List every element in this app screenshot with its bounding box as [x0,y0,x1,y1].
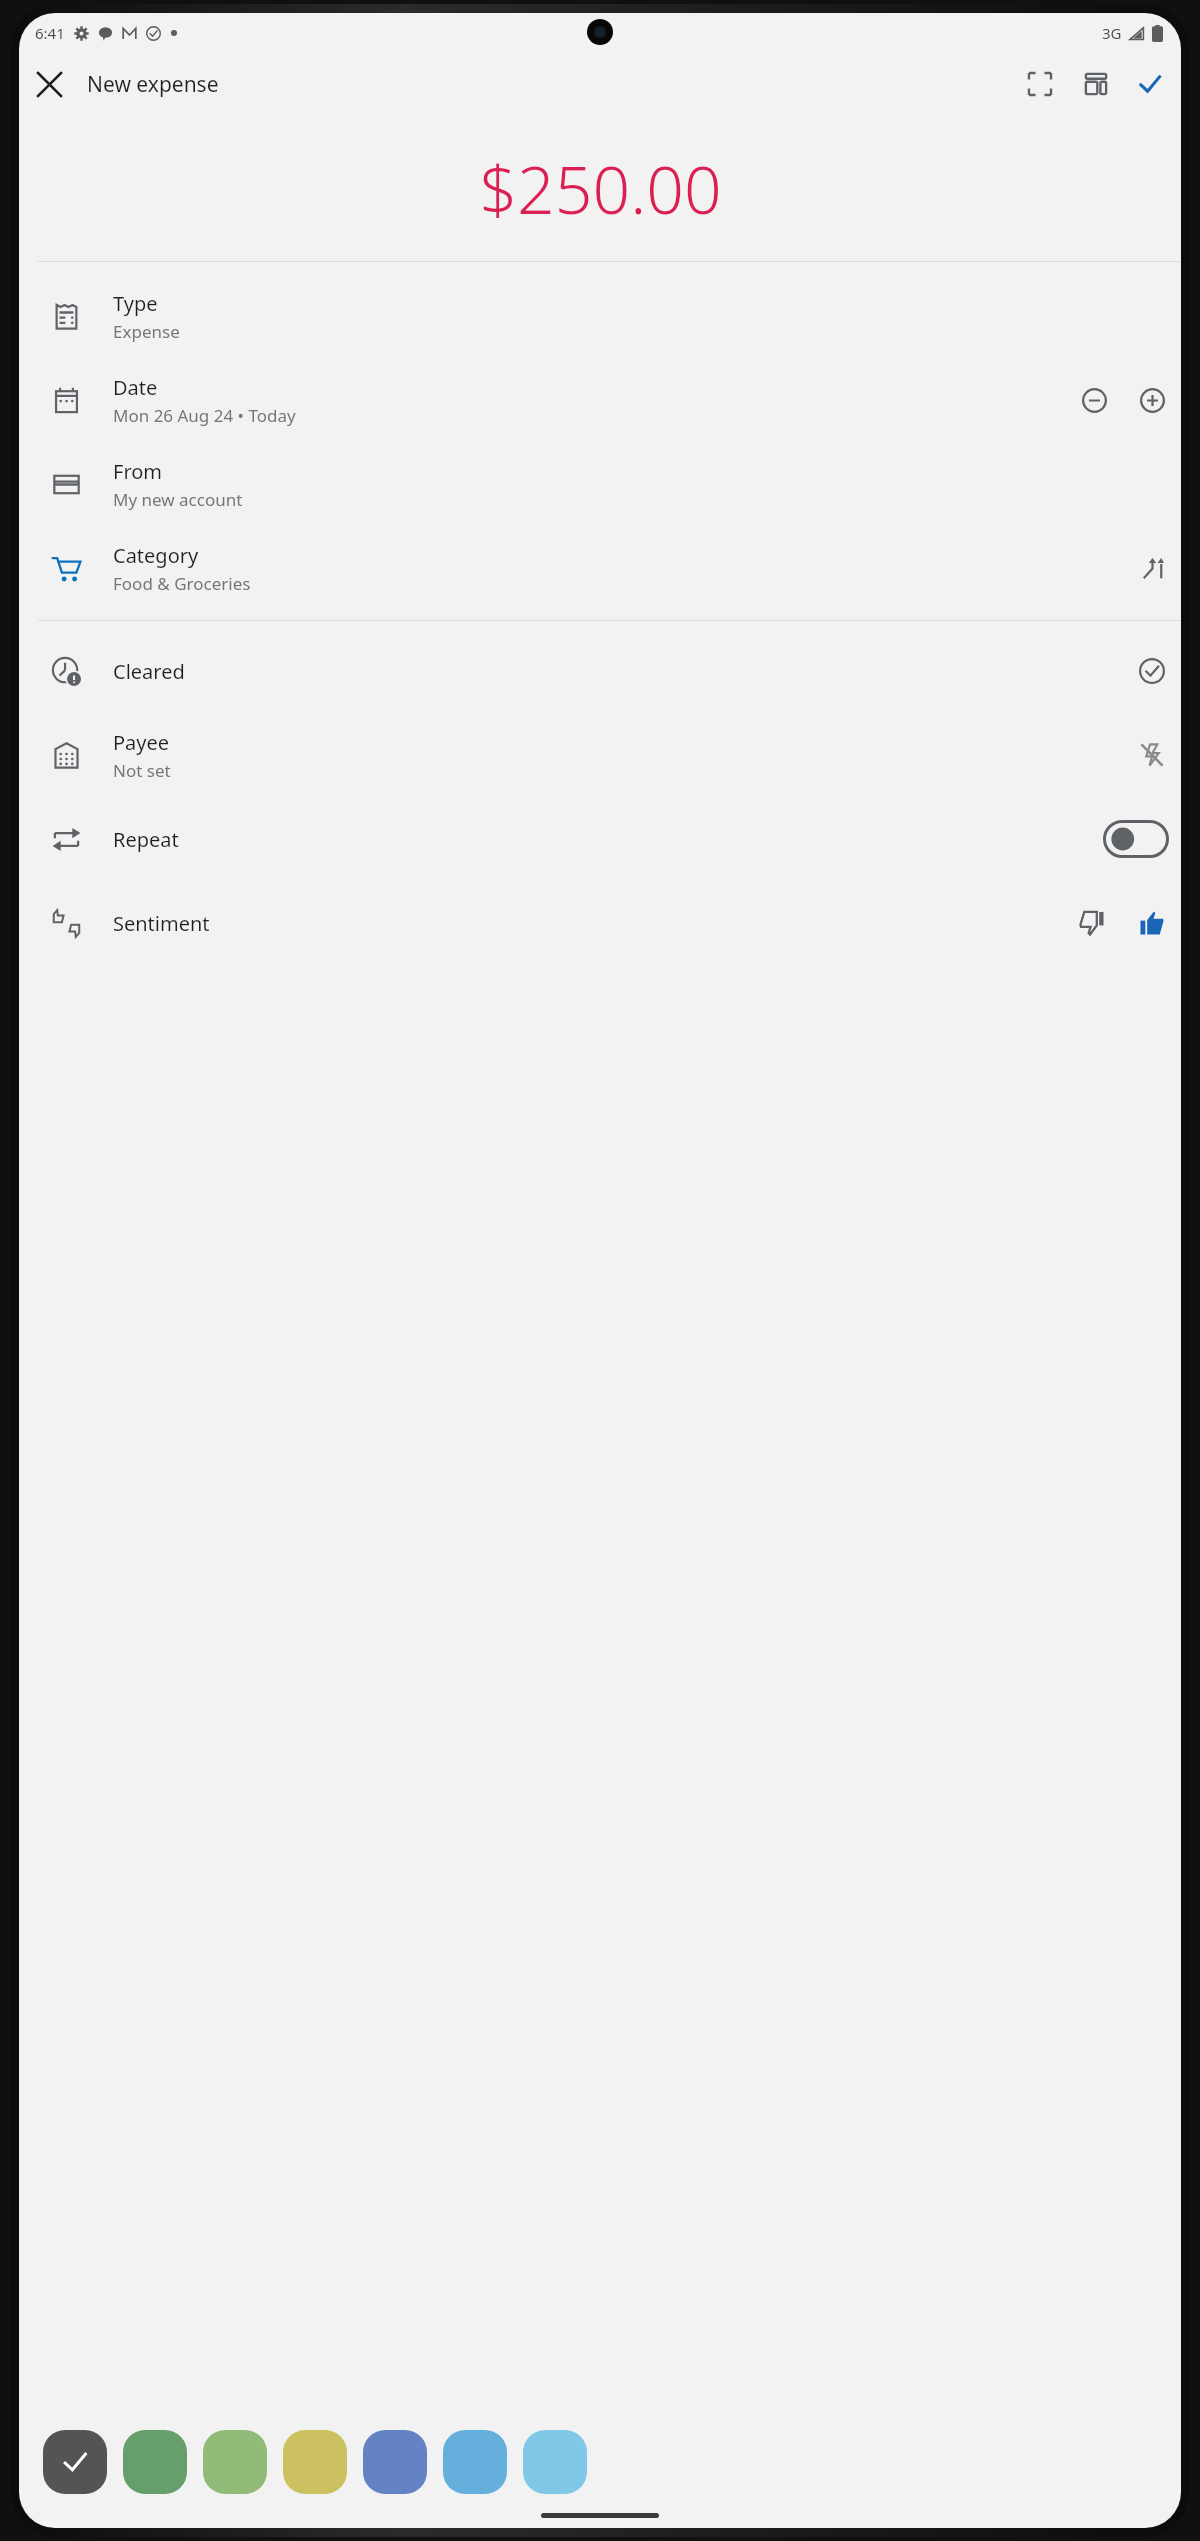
staticText: 6:41 [35,23,65,43]
staticText: Category [113,542,199,569]
staticText: From [113,458,163,485]
staticText: Payee [113,729,170,756]
button[interactable]: Cleared [1129,648,1175,694]
staticText: Not set [113,759,171,782]
button[interactable]: Colour 4 [283,2430,347,2494]
button[interactable]: Category [19,526,1181,610]
button[interactable]: Flash off [1129,732,1175,778]
button[interactable]: Save [1127,61,1173,107]
button[interactable]: From [19,442,1181,526]
staticText: Repeat [113,826,179,853]
button[interactable]: Thumb up [1129,900,1175,946]
button[interactable]: Date [19,358,1181,442]
staticText: Cleared [113,658,185,685]
button[interactable]: Thumb down [1069,900,1115,946]
staticText: Food & Groceries [113,572,251,595]
button[interactable]: Colour 2 [123,2430,187,2494]
button[interactable]: Colour 6 [443,2430,507,2494]
button[interactable]: Sentiment [19,881,1181,965]
button[interactable]: Colour 1 [43,2430,107,2494]
button[interactable]: Type [19,274,1181,358]
button[interactable]: Split [1129,545,1175,591]
staticText: Date [113,374,158,401]
staticText: My new account [113,488,243,511]
button[interactable]: Cleared [19,629,1181,713]
button[interactable]: Colour 5 [363,2430,427,2494]
button[interactable]: $250.00 [19,115,1181,261]
button[interactable]: Previous day [1071,377,1117,423]
button[interactable]: Layout [1073,61,1119,107]
staticText: Expense [113,320,180,343]
button[interactable]: Fullscreen [1017,61,1063,107]
button[interactable]: Close [25,60,73,108]
button[interactable]: Repeat toggle [1097,815,1175,863]
staticText: Type [113,290,158,317]
button[interactable]: Payee [19,713,1181,797]
staticText: Sentiment [113,910,210,937]
staticText: Mon 26 Aug 24 • Today [113,404,296,427]
staticText: 3G [1102,23,1122,43]
button[interactable]: Repeat [19,797,1181,881]
button[interactable]: Colour 7 [523,2430,587,2494]
staticText: New expense [87,70,219,99]
button[interactable]: Next day [1129,377,1175,423]
staticText: $250.00 [479,143,722,233]
button[interactable]: Colour 3 [203,2430,267,2494]
